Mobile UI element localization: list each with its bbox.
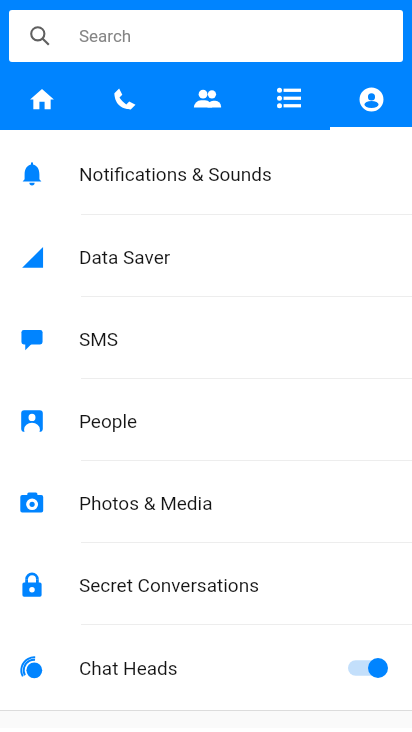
staticText: Search <box>79 26 132 46</box>
button[interactable]: Lists <box>248 62 330 130</box>
button[interactable]: Photos & Media <box>0 461 412 543</box>
staticText: Photos & Media <box>79 492 213 514</box>
staticText: Secret Conversations <box>79 574 259 596</box>
staticText: Data Saver <box>79 246 171 268</box>
button[interactable]: Account <box>330 62 412 130</box>
button[interactable]: Chat Heads <box>0 625 412 708</box>
button[interactable]: Data Saver <box>0 215 412 297</box>
button[interactable]: Search <box>9 10 403 62</box>
button[interactable]: Secret Conversations <box>0 543 412 625</box>
button[interactable]: Calls <box>83 62 166 130</box>
button[interactable]: People <box>0 379 412 461</box>
button[interactable]: People <box>166 62 248 130</box>
staticText: Chat Heads <box>79 657 178 679</box>
staticText: People <box>79 410 138 432</box>
button[interactable]: SMS <box>0 297 412 379</box>
staticText: SMS <box>79 328 119 350</box>
button[interactable]: Home <box>0 62 83 130</box>
button[interactable]: Notifications & Sounds <box>0 130 412 215</box>
staticText: Notifications & Sounds <box>79 163 272 185</box>
